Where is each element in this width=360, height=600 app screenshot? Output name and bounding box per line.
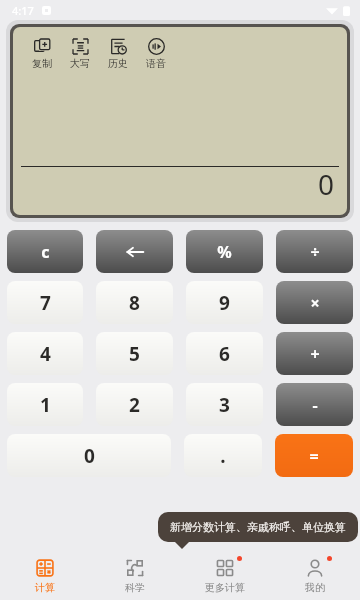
button[interactable]: 新增分数计算、亲戚称呼、单位换算 (158, 512, 358, 542)
button[interactable]: 更多计算 (180, 552, 270, 600)
button[interactable]: . (184, 434, 262, 477)
button[interactable]: 2 (96, 383, 173, 426)
button[interactable]: + (276, 332, 353, 375)
button[interactable]: ÷ (276, 230, 353, 273)
button[interactable]: × (276, 281, 353, 324)
staticText: 更多计算 (205, 581, 245, 594)
button[interactable]: 大写 (61, 35, 99, 72)
button[interactable]: 5 (96, 332, 173, 375)
button[interactable]: 4 (7, 332, 83, 375)
staticText: 3 (219, 392, 230, 418)
staticText: % (217, 241, 232, 263)
staticText: 语音 (146, 57, 166, 70)
staticText: × (310, 292, 320, 314)
staticText: 4:17 (12, 3, 34, 18)
staticText: 4 (40, 341, 51, 367)
staticText: - (312, 394, 318, 416)
button[interactable]: 0 (7, 434, 171, 477)
staticText: 2 (129, 392, 140, 418)
staticText: 7 (40, 290, 51, 316)
staticText: = (309, 445, 319, 467)
button[interactable]: 7 (7, 281, 83, 324)
staticText: . (220, 443, 226, 469)
button[interactable]: 计算 (0, 552, 90, 600)
staticText: 5 (129, 341, 140, 367)
staticText: 1 (40, 392, 51, 418)
button[interactable]: 8 (96, 281, 173, 324)
staticText: ÷ (310, 241, 320, 263)
staticText: 我的 (305, 581, 325, 594)
staticText: 0 (318, 165, 335, 203)
button[interactable]: 语音 (137, 35, 175, 72)
staticText: 0 (84, 443, 95, 469)
button[interactable]: = (275, 434, 353, 477)
staticText: c (41, 241, 50, 263)
staticText: + (310, 343, 320, 365)
staticText: 8 (129, 290, 140, 316)
button[interactable]: Backspace (96, 230, 173, 273)
staticText: 9 (219, 290, 230, 316)
staticText: 6 (219, 341, 230, 367)
button[interactable]: 9 (186, 281, 263, 324)
staticText: 计算 (35, 581, 55, 594)
button[interactable]: 6 (186, 332, 263, 375)
button[interactable]: - (276, 383, 353, 426)
button[interactable]: 1 (7, 383, 83, 426)
staticText: 复制 (32, 57, 52, 70)
staticText: 新增分数计算、亲戚称呼、单位换算 (170, 520, 346, 534)
staticText: 历史 (108, 57, 128, 70)
staticText: 科学 (125, 581, 145, 594)
button[interactable]: 历史 (99, 35, 137, 72)
staticText: 大写 (70, 57, 90, 70)
button[interactable]: % (186, 230, 263, 273)
button[interactable]: 科学 (90, 552, 180, 600)
button[interactable]: 我的 (270, 552, 360, 600)
button[interactable]: c (7, 230, 83, 273)
button[interactable]: 复制 (23, 35, 61, 72)
button[interactable]: 3 (186, 383, 263, 426)
